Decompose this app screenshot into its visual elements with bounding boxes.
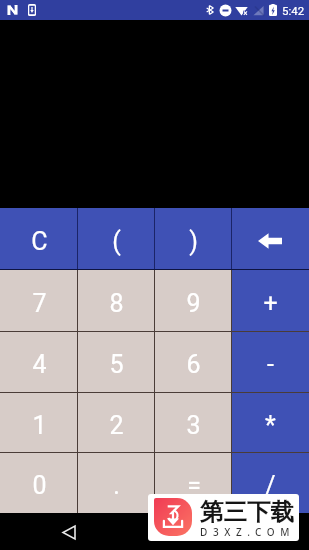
- button[interactable]: +: [232, 270, 309, 332]
- button[interactable]: 9: [155, 270, 232, 332]
- staticText: ): [189, 227, 198, 256]
- staticText: .: [113, 471, 120, 500]
- button[interactable]: 6: [155, 332, 232, 393]
- staticText: D3XZ.COM: [200, 525, 296, 539]
- button[interactable]: ): [155, 208, 232, 270]
- staticText: (: [112, 227, 121, 256]
- button[interactable]: /: [232, 453, 309, 513]
- staticText: +: [263, 289, 278, 318]
- button[interactable]: (: [78, 208, 155, 270]
- staticText: 7: [32, 289, 47, 318]
- button[interactable]: =: [155, 453, 232, 513]
- staticText: 6: [186, 350, 201, 379]
- button[interactable]: -: [232, 332, 309, 393]
- staticText: 2: [109, 411, 124, 440]
- staticText: -: [267, 350, 274, 379]
- staticText: /: [265, 471, 276, 500]
- staticText: 0: [32, 471, 47, 500]
- button[interactable]: *: [232, 393, 309, 453]
- staticText: 第三下载: [200, 497, 294, 527]
- staticText: 3: [186, 411, 201, 440]
- button[interactable]: 1: [0, 393, 78, 453]
- staticText: 5:42: [282, 4, 305, 17]
- staticText: 1: [32, 411, 47, 440]
- button[interactable]: 2: [78, 393, 155, 453]
- staticText: C: [31, 227, 48, 256]
- button[interactable]: 8: [78, 270, 155, 332]
- button[interactable]: 4: [0, 332, 78, 393]
- other: Backspace: [258, 233, 282, 249]
- button[interactable]: Back: [55, 518, 83, 546]
- button[interactable]: Home: [141, 518, 169, 546]
- button[interactable]: 5: [78, 332, 155, 393]
- staticText: 9: [186, 289, 201, 318]
- button[interactable]: C: [0, 208, 78, 270]
- staticText: =: [187, 471, 201, 500]
- button[interactable]: 0: [0, 453, 78, 513]
- button[interactable]: 7: [0, 270, 78, 332]
- staticText: 4: [32, 350, 47, 379]
- staticText: 8: [109, 289, 124, 318]
- button[interactable]: .: [78, 453, 155, 513]
- button[interactable]: 3: [155, 393, 232, 453]
- staticText: 5: [109, 350, 124, 379]
- button[interactable]: Recent apps: [226, 518, 254, 546]
- staticText: *: [265, 411, 276, 440]
- button[interactable]: Backspace: [232, 208, 309, 270]
